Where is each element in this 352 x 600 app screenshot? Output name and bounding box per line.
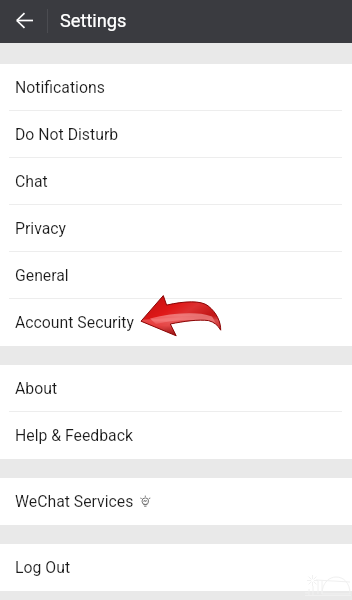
- staticText: General: [15, 266, 69, 285]
- staticText: Settings: [60, 10, 127, 31]
- staticText: Privacy: [15, 219, 67, 238]
- staticText: Account Security: [15, 313, 134, 332]
- button[interactable]: Account Security: [0, 299, 352, 346]
- button[interactable]: Back: [6, 2, 42, 38]
- button[interactable]: Chat: [0, 158, 352, 205]
- staticText: About: [15, 379, 58, 398]
- staticText: Chat: [15, 172, 48, 191]
- button[interactable]: Privacy: [0, 205, 352, 252]
- staticText: WeChat Services: [15, 492, 134, 511]
- button[interactable]: Help & Feedback: [0, 412, 352, 459]
- staticText: Notifications: [15, 78, 105, 97]
- button[interactable]: WeChat Services: [0, 478, 352, 525]
- staticText: Log Out: [15, 558, 71, 577]
- button[interactable]: General: [0, 252, 352, 299]
- button[interactable]: About: [0, 365, 352, 412]
- button[interactable]: Notifications: [0, 64, 352, 111]
- staticText: Help & Feedback: [15, 426, 133, 445]
- button[interactable]: Log Out: [0, 544, 352, 591]
- staticText: Do Not Disturb: [15, 125, 119, 144]
- button[interactable]: Do Not Disturb: [0, 111, 352, 158]
